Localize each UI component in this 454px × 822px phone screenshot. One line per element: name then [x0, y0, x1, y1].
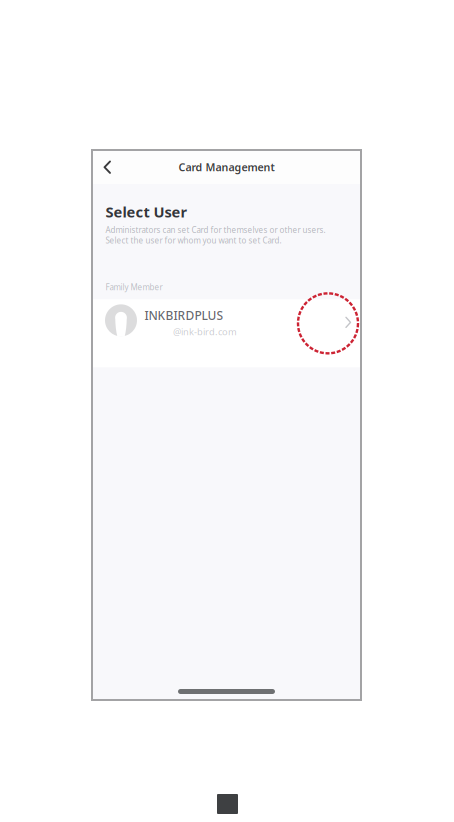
button[interactable]: Back — [92, 150, 118, 184]
staticText: Select User — [105, 202, 187, 221]
staticText: Card Management — [178, 160, 274, 174]
button[interactable]: INKBIRDPLUS — [92, 299, 361, 367]
staticText: Family Member — [105, 282, 162, 292]
staticText: Administrators can set Card for themselv… — [105, 224, 325, 235]
staticText: @ink-bird.com — [173, 325, 237, 338]
staticText: INKBIRDPLUS — [144, 307, 223, 323]
staticText: Select the user for whom you want to set… — [105, 235, 281, 246]
